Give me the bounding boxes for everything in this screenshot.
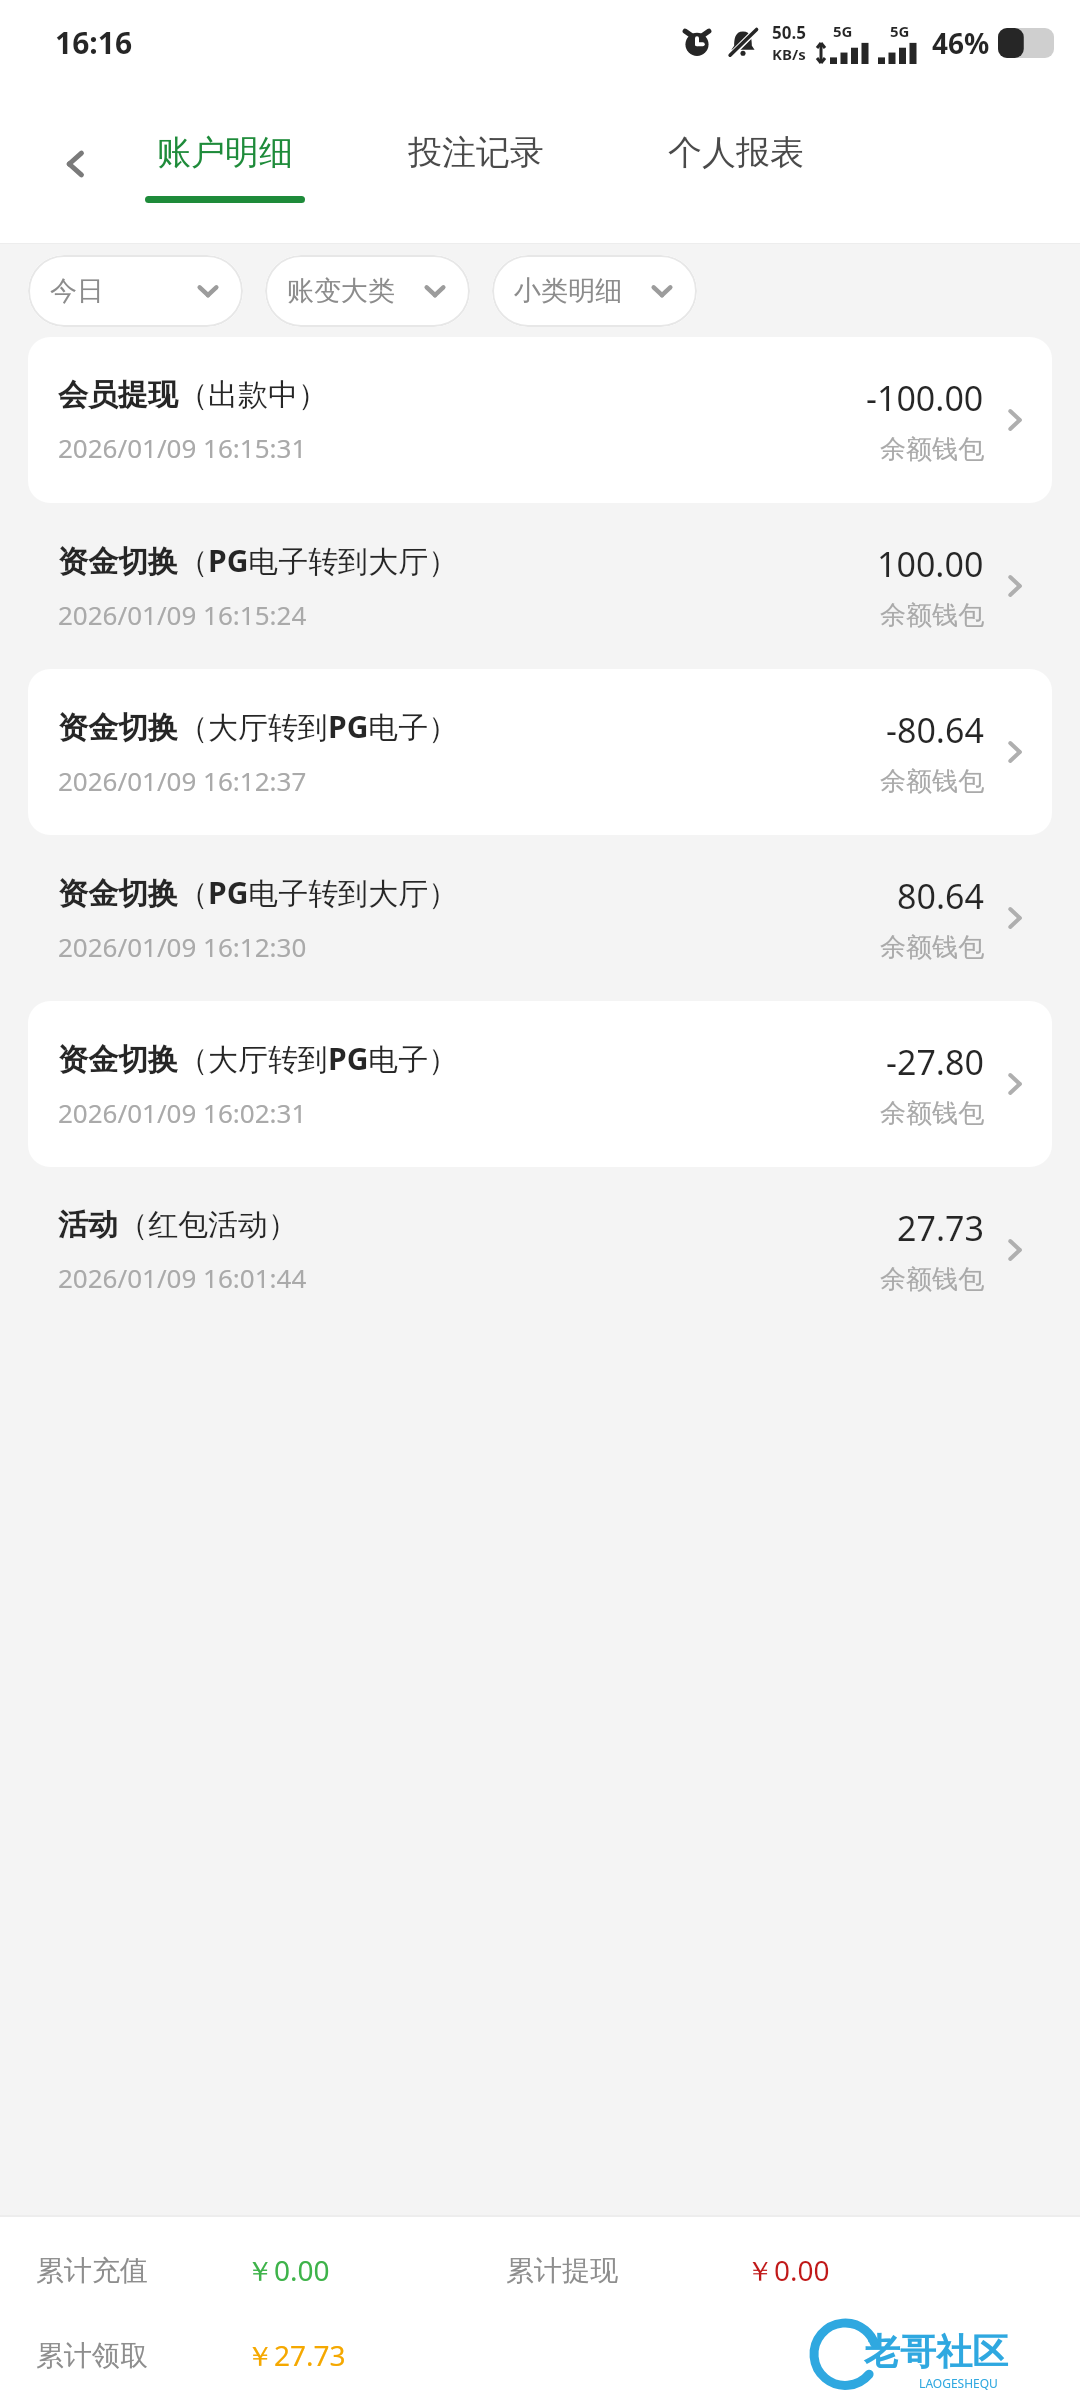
staticText: 投注记录 xyxy=(408,131,544,174)
staticText: 余额钱包 xyxy=(880,599,984,632)
staticText: -100.00 xyxy=(866,375,984,421)
button[interactable]: 资金切换（PG电子转到大厅） xyxy=(28,835,1052,1001)
button[interactable]: 会员提现（出款中） xyxy=(28,337,1052,503)
staticText: LAOGESHEQU xyxy=(919,2375,998,2391)
button[interactable]: 个人报表 xyxy=(668,85,804,243)
button[interactable]: 今日 xyxy=(28,255,243,327)
staticText: ￥27.73 xyxy=(246,2336,506,2374)
staticText: 资金切换（PG电子转到大厅） xyxy=(58,872,459,913)
button[interactable]: Back xyxy=(40,128,112,200)
button[interactable]: 资金切换（大厅转到PG电子） xyxy=(28,1001,1052,1167)
staticText: 余额钱包 xyxy=(880,765,984,798)
staticText: 老哥社区 xyxy=(864,2329,1008,2374)
staticText: ￥0.00 xyxy=(246,2251,506,2289)
button[interactable]: 账变大类 xyxy=(265,255,470,327)
staticText: 余额钱包 xyxy=(880,931,984,964)
staticText: 累计领取 xyxy=(36,2338,246,2373)
staticText: 资金切换（大厅转到PG电子） xyxy=(58,1038,459,1079)
staticText: 资金切换（大厅转到PG电子） xyxy=(58,706,459,747)
button[interactable]: 资金切换（大厅转到PG电子） xyxy=(28,669,1052,835)
staticText: 2026/01/09 16:02:31 xyxy=(58,1095,307,1130)
staticText: 50.5 xyxy=(772,21,806,44)
staticText: 2026/01/09 16:12:30 xyxy=(58,929,307,964)
staticText: 80.64 xyxy=(897,873,984,919)
staticText: 5G xyxy=(890,21,910,41)
staticText: 账变大类 xyxy=(287,274,395,308)
staticText: 5G xyxy=(833,21,853,41)
button[interactable]: 小类明细 xyxy=(492,255,697,327)
button[interactable]: 账户明细 xyxy=(145,85,305,243)
staticText: 46% xyxy=(932,24,990,62)
staticText: 16:16 xyxy=(55,22,133,63)
staticText: ￥0.00 xyxy=(746,2251,830,2289)
staticText: 活动（红包活动） xyxy=(58,1206,298,1244)
staticText: KB/s xyxy=(772,44,806,64)
staticText: 小类明细 xyxy=(514,274,622,308)
staticText: 2026/01/09 16:01:44 xyxy=(58,1260,307,1295)
staticText: 今日 xyxy=(50,274,104,308)
staticText: -80.64 xyxy=(886,707,984,753)
button[interactable]: 投注记录 xyxy=(408,85,544,243)
button[interactable]: 活动（红包活动） xyxy=(28,1167,1052,1333)
button[interactable]: 资金切换（PG电子转到大厅） xyxy=(28,503,1052,669)
staticText: 个人报表 xyxy=(668,131,804,174)
staticText: -27.80 xyxy=(886,1039,984,1085)
staticText: 累计提现 xyxy=(506,2253,746,2288)
staticText: 2026/01/09 16:15:31 xyxy=(58,430,307,465)
staticText: 资金切换（PG电子转到大厅） xyxy=(58,540,459,581)
staticText: 27.73 xyxy=(897,1205,984,1251)
staticText: 余额钱包 xyxy=(880,1097,984,1130)
staticText: 会员提现（出款中） xyxy=(58,376,328,414)
staticText: 余额钱包 xyxy=(880,1263,984,1296)
staticText: 2026/01/09 16:15:24 xyxy=(58,597,307,632)
staticText: 100.00 xyxy=(877,541,984,587)
staticText: 2026/01/09 16:12:37 xyxy=(58,763,307,798)
staticText: 累计充值 xyxy=(36,2253,246,2288)
staticText: 余额钱包 xyxy=(880,433,984,466)
staticText: 账户明细 xyxy=(157,131,293,174)
